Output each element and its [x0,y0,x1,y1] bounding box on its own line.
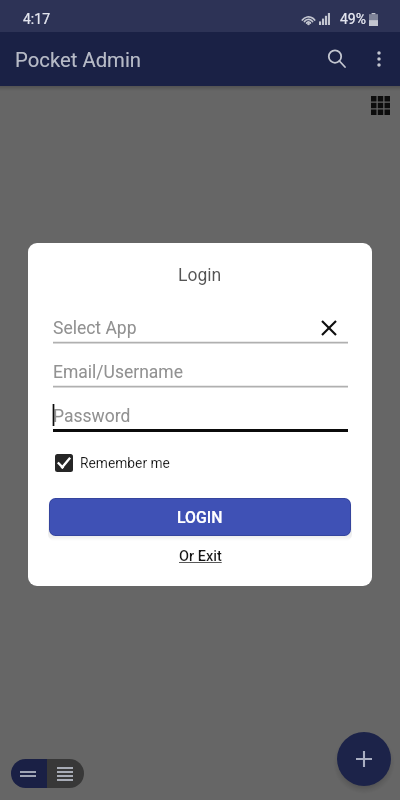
button[interactable]: Select App [49,313,349,344]
staticText: LOGIN [177,508,223,527]
staticText: 4:17 [23,11,50,27]
button[interactable]: Remember me [55,452,170,474]
button[interactable]: Clear selected app [316,315,342,341]
button[interactable]: Detailed list view [47,759,84,788]
staticText: Or Exit [179,548,222,565]
staticText: Email/Username [53,362,183,383]
button[interactable]: Password [49,401,349,432]
button[interactable]: Compact list view [11,759,47,788]
staticText: Password [53,406,131,427]
button[interactable]: Search [308,35,356,83]
button[interactable]: Apps grid [371,96,390,115]
button[interactable]: Add [337,732,391,786]
staticText: Remember me [80,455,170,471]
staticText: Pocket Admin [15,48,142,72]
button[interactable]: LOGIN [49,498,351,536]
staticText: 49% [340,11,366,27]
staticText: Select App [53,318,137,339]
button[interactable]: Or Exit [179,548,222,565]
staticText: Login [178,265,222,286]
button[interactable]: More options [356,36,400,82]
button[interactable]: Email/Username [49,357,349,388]
